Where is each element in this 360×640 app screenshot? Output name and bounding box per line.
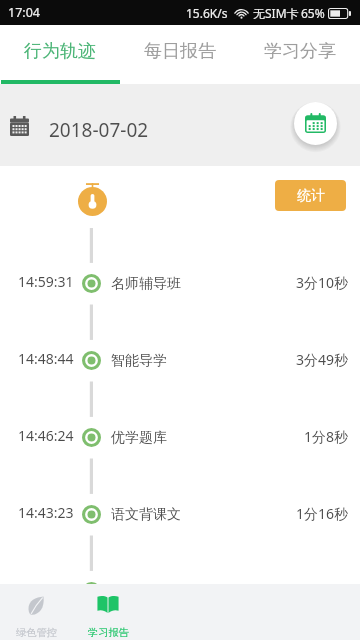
button[interactable]: 学习分享 (240, 25, 360, 84)
staticText: 14:59:31 (18, 272, 74, 291)
staticText: 17:04 (8, 4, 40, 21)
staticText: 优学题库 (111, 429, 167, 447)
staticText: 1分16秒 (296, 504, 349, 523)
staticText: 14:43:23 (18, 503, 74, 522)
button[interactable]: 14:43:23 (0, 476, 360, 553)
button[interactable]: 每日报告 (120, 25, 240, 84)
staticText: 学习分享 (264, 40, 336, 63)
staticText: 语文背课文 (111, 583, 181, 601)
staticText: 行为轨迹 (24, 40, 96, 63)
button[interactable]: 学习报告 (72, 584, 144, 640)
staticText: 统计 (297, 187, 325, 205)
button[interactable]: 14:46:24 (0, 399, 360, 476)
staticText: 智能导学 (111, 352, 167, 370)
staticText: 14:41:07 (18, 580, 74, 599)
button[interactable]: 统计 (275, 180, 346, 211)
staticText: 2018-07-02 (49, 117, 149, 143)
staticText: 14:46:24 (18, 426, 74, 445)
staticText: 14:48:44 (18, 349, 74, 368)
staticText: 学习报告 (88, 626, 129, 639)
button[interactable]: Pick date (294, 102, 337, 145)
staticText: 无SIM卡 (253, 5, 299, 21)
staticText: 3分49秒 (296, 350, 349, 369)
staticText: 每日报告 (144, 40, 216, 63)
staticText: 15.6K/s (186, 5, 228, 21)
button[interactable]: 行为轨迹 (0, 25, 120, 84)
button[interactable]: 14:48:44 (0, 322, 360, 399)
staticText: 1分8秒 (304, 427, 349, 446)
staticText: 65% (301, 5, 325, 21)
staticText: 1分2秒 (304, 581, 349, 600)
staticText: 语文背课文 (111, 506, 181, 524)
staticText: 名师辅导班 (111, 275, 181, 293)
staticText: 绿色管控 (16, 626, 57, 639)
staticText: 3分10秒 (296, 273, 349, 292)
button[interactable]: 14:59:31 (0, 245, 360, 322)
button[interactable]: 14:41:07 (0, 553, 360, 630)
button[interactable]: 绿色管控 (0, 584, 72, 640)
